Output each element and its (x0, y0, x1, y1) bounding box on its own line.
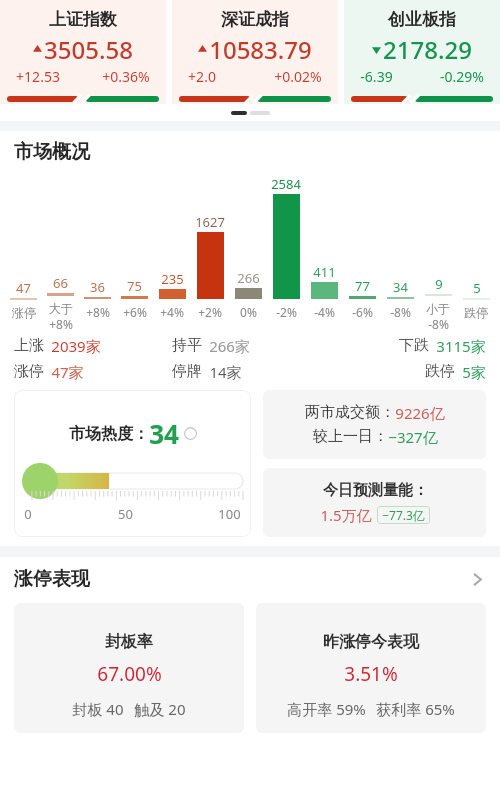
staticText: 涨停 (12, 305, 36, 320)
staticText: 市场热度： (69, 424, 149, 444)
staticText: −327亿 (388, 427, 438, 447)
staticText: +0.02% (274, 67, 322, 86)
staticText: 2178.29 (383, 33, 472, 66)
staticText: 9226亿 (395, 403, 445, 423)
staticText: 411 (313, 263, 336, 281)
staticText: 1627 (195, 213, 225, 231)
staticText: 深证成指 (221, 9, 289, 30)
staticText: 266 (237, 269, 260, 287)
staticText: +2.0 (188, 67, 216, 86)
staticText: 封板率 (105, 632, 153, 652)
staticText: 封板 40 (72, 699, 124, 719)
staticText: 0% (240, 304, 257, 320)
staticText: −77.3亿 (382, 507, 425, 523)
staticText: 67.00% (97, 661, 162, 687)
staticText: 34 (393, 278, 408, 296)
staticText: +8% (49, 316, 73, 332)
staticText: 涨停表现 (14, 567, 90, 591)
button[interactable]: 封板率 (14, 603, 244, 733)
staticText: 今日预测量能： (323, 481, 428, 500)
staticText: 66 (53, 274, 68, 292)
button[interactable]: 市场热度： (14, 390, 251, 537)
staticText: 1.5万亿 (320, 505, 372, 525)
staticText: +12.53 (16, 67, 60, 86)
button[interactable]: 昨涨停今表现 (256, 603, 486, 733)
other: 查看更多 (469, 571, 486, 588)
staticText: 2584 (271, 175, 301, 193)
staticText: 0 (24, 505, 32, 523)
staticText: 266家 (209, 336, 250, 356)
staticText: -6.39 (360, 67, 393, 86)
button[interactable]: 今日预测量能： (263, 468, 486, 537)
staticText: 75 (127, 277, 142, 295)
staticText: 100 (218, 505, 241, 523)
staticText: -8% (428, 316, 449, 332)
staticText: 下跌 (399, 336, 429, 355)
staticText: -2% (276, 304, 297, 320)
staticText: 停牌 (172, 362, 202, 381)
staticText: 36 (90, 278, 105, 296)
staticText: -8% (390, 304, 411, 320)
staticText: 上涨 (14, 336, 44, 355)
staticText: +6% (123, 304, 147, 320)
staticText: 市场概况 (14, 140, 90, 164)
staticText: +8% (86, 304, 110, 320)
staticText: 9 (435, 275, 443, 293)
staticText: 上证指数 (49, 9, 117, 30)
button[interactable]: 创业板指 (344, 0, 500, 104)
button[interactable]: 上证指数 (0, 0, 166, 104)
button[interactable]: 涨停表现 (0, 567, 500, 591)
staticText: 47 (16, 279, 31, 297)
staticText: 47家 (51, 362, 84, 382)
staticText: -4% (314, 304, 335, 320)
staticText: 235 (161, 270, 184, 288)
staticText: 获利率 65% (376, 699, 455, 719)
staticText: 创业板指 (388, 9, 456, 30)
staticText: +4% (160, 304, 184, 320)
staticText: 77 (355, 277, 370, 295)
staticText: 大于 (49, 301, 73, 316)
staticText: 3505.58 (44, 33, 133, 66)
staticText: 34 (149, 416, 179, 451)
staticText: 涨停 (14, 362, 44, 381)
staticText: 2039家 (51, 336, 101, 356)
staticText: -6% (352, 304, 373, 320)
staticText: 50 (118, 505, 133, 523)
staticText: 触及 20 (134, 699, 186, 719)
staticText: 5 (473, 279, 481, 297)
staticText: 持平 (172, 336, 202, 355)
button[interactable]: 深证成指 (172, 0, 338, 104)
staticText: 跌停 (464, 305, 488, 320)
staticText: 高开率 59% (287, 699, 366, 719)
staticText: 3.51% (344, 661, 398, 687)
staticText: 10583.79 (209, 33, 312, 66)
staticText: 昨涨停今表现 (323, 632, 419, 652)
staticText: 两市成交额： (305, 403, 395, 422)
other: 说明 (184, 427, 197, 440)
staticText: +2% (198, 304, 222, 320)
staticText: -0.29% (440, 67, 484, 86)
button[interactable]: 两市成交额： (263, 390, 486, 459)
staticText: 小于 (426, 301, 450, 316)
staticText: +0.36% (102, 67, 150, 86)
staticText: 跌停 (425, 362, 455, 381)
staticText: 5家 (462, 362, 486, 382)
staticText: 3115家 (436, 336, 486, 356)
staticText: 14家 (209, 362, 242, 382)
staticText: 较上一日： (313, 427, 388, 446)
